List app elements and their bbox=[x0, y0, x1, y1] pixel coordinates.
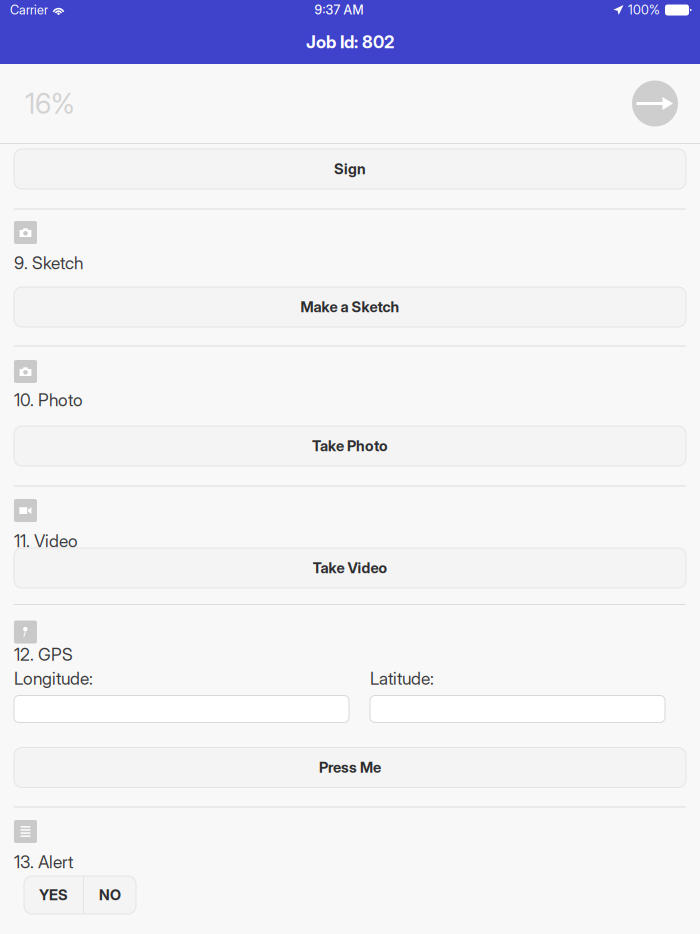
staticText: 9:37 AM bbox=[314, 2, 363, 18]
staticText: Latitude: bbox=[370, 668, 434, 689]
button[interactable]: Sign bbox=[14, 149, 686, 189]
staticText: Sign bbox=[334, 160, 366, 178]
staticText: Longitude: bbox=[14, 668, 93, 689]
staticText: Take Video bbox=[312, 559, 387, 577]
button[interactable]: NO bbox=[84, 876, 136, 914]
button[interactable]: Press Me bbox=[14, 747, 686, 787]
staticText: 11. Video bbox=[14, 530, 78, 551]
button[interactable]: YES bbox=[24, 876, 83, 914]
staticText: Press Me bbox=[319, 759, 381, 776]
staticText: Carrier bbox=[10, 2, 48, 18]
button[interactable]: Make a Sketch bbox=[14, 287, 686, 327]
staticText: 9. Sketch bbox=[14, 252, 83, 273]
staticText: 12. GPS bbox=[14, 644, 73, 665]
staticText: 16% bbox=[25, 87, 75, 120]
staticText: Make a Sketch bbox=[300, 298, 399, 316]
staticText: Job Id: 802 bbox=[306, 31, 394, 52]
staticText: YES bbox=[39, 886, 68, 904]
button[interactable]: Take Photo bbox=[14, 426, 686, 466]
staticText: NO bbox=[99, 886, 121, 904]
button[interactable]: Next step bbox=[632, 80, 678, 126]
button[interactable]: Take Video bbox=[14, 548, 686, 588]
staticText: 10. Photo bbox=[14, 389, 83, 410]
staticText: 100% bbox=[628, 2, 660, 18]
staticText: 13. Alert bbox=[14, 851, 73, 872]
staticText: Take Photo bbox=[312, 437, 388, 455]
